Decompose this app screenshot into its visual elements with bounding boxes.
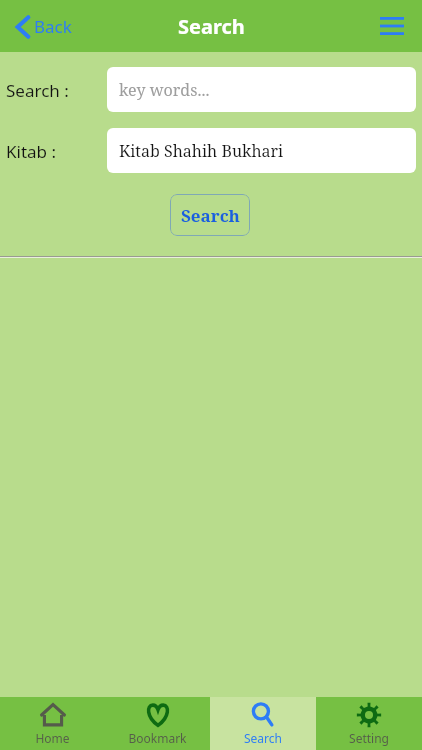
- staticText: Search: [178, 13, 245, 40]
- button[interactable]: Kitab Shahih Bukhari: [107, 128, 416, 173]
- button[interactable]: key words...: [107, 67, 416, 112]
- button[interactable]: Menu: [372, 9, 412, 43]
- button[interactable]: Search: [210, 697, 316, 750]
- staticText: Bookmark: [128, 730, 187, 746]
- staticText: key words...: [119, 79, 210, 101]
- staticText: Search :: [6, 79, 69, 102]
- button[interactable]: Setting: [316, 697, 422, 750]
- staticText: Kitab Shahih Bukhari: [119, 140, 284, 162]
- staticText: Setting: [349, 730, 389, 746]
- button[interactable]: Bookmark: [105, 697, 210, 750]
- button[interactable]: Back: [10, 9, 78, 44]
- staticText: Kitab :: [6, 140, 57, 163]
- staticText: Back: [34, 15, 72, 38]
- button[interactable]: Search: [170, 194, 250, 236]
- staticText: Search: [244, 730, 282, 746]
- staticText: Search: [181, 204, 240, 227]
- button[interactable]: Home: [0, 697, 105, 750]
- staticText: Home: [35, 730, 70, 746]
